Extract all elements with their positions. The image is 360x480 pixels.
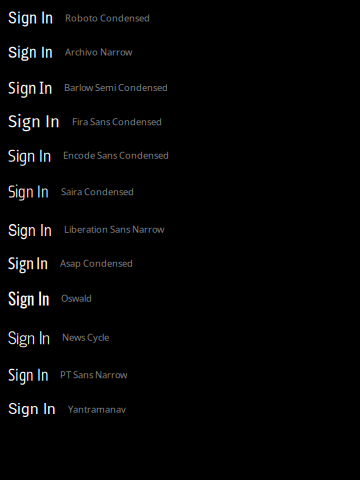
staticText: Sign In	[8, 178, 49, 205]
staticText: Sign In	[8, 145, 51, 165]
staticText: Sign In	[8, 76, 52, 99]
staticText: Sign In	[8, 40, 53, 63]
staticText: Barlow Semi Condensed	[64, 81, 168, 93]
staticText: Sign In	[8, 323, 50, 351]
staticText: Encode Sans Condensed	[63, 149, 169, 161]
staticText: Sign In	[8, 218, 52, 241]
staticText: Sign In	[8, 8, 53, 27]
staticText: Oswald	[61, 292, 92, 304]
staticText: Saira Condensed	[61, 185, 134, 198]
staticText: Archivo Narrow	[65, 46, 132, 58]
staticText: Sign In	[8, 254, 48, 273]
staticText: Roboto Condensed	[65, 12, 150, 24]
staticText: PT Sans Narrow	[60, 368, 127, 381]
staticText: Sign In	[8, 364, 48, 385]
staticText: Asap Condensed	[60, 257, 133, 269]
staticText: News Cycle	[62, 331, 109, 343]
staticText: Sign In	[8, 112, 60, 132]
staticText: Sign In	[8, 286, 49, 310]
staticText: Fira Sans Condensed	[72, 115, 162, 128]
staticText: Sign In	[8, 398, 56, 420]
staticText: Liberation Sans Narrow	[64, 223, 164, 235]
staticText: Yantramanav	[68, 403, 126, 415]
